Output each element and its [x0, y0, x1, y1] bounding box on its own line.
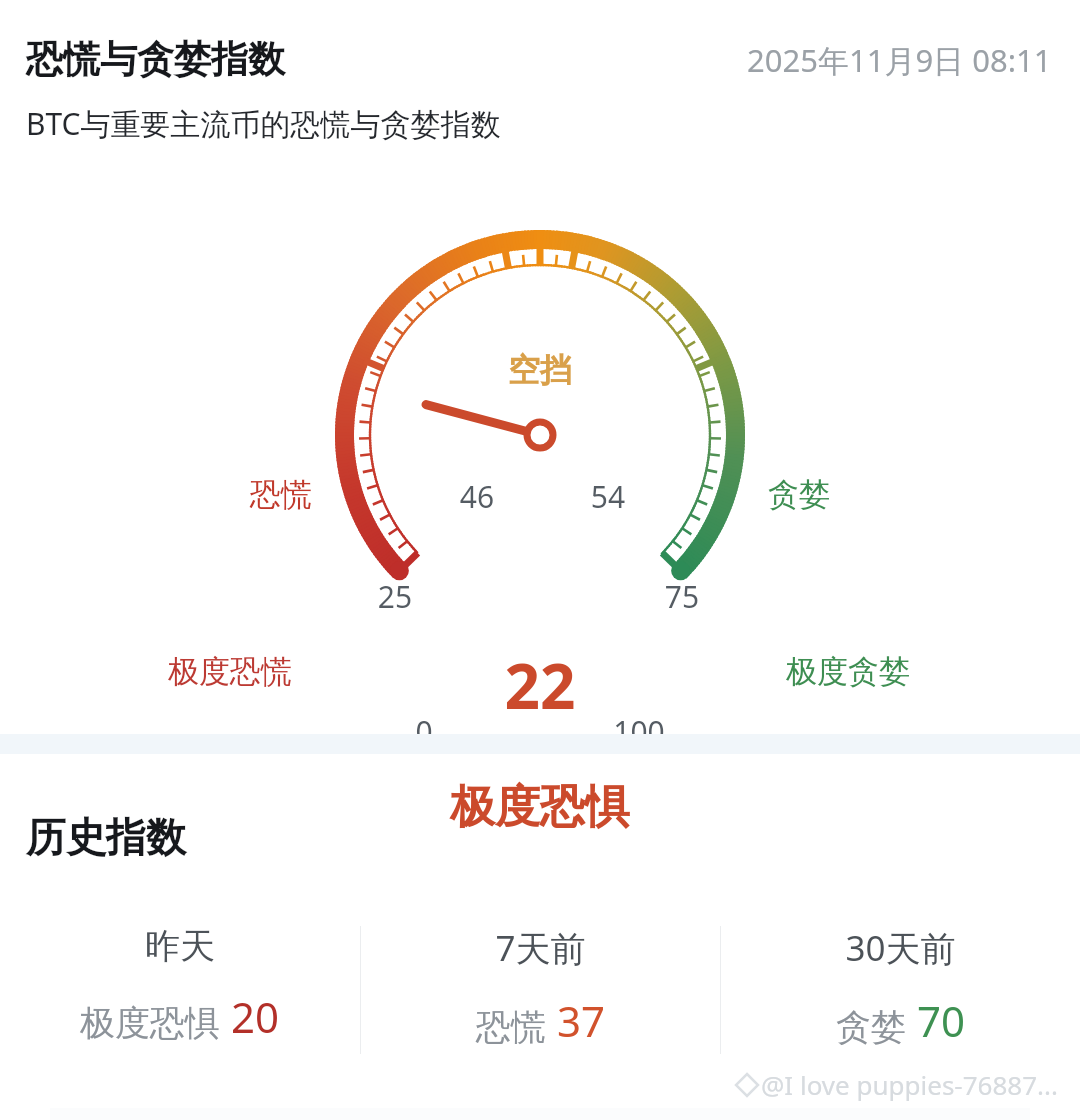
staticText: 贪婪 [836, 1005, 906, 1049]
staticText: 46 [327, 476, 627, 517]
staticText: 昨天 [145, 924, 215, 968]
staticText: 54 [458, 476, 758, 517]
staticText: 25 [245, 576, 545, 617]
staticText: 30天前 [845, 924, 956, 972]
staticText: @I love puppies-76887... [761, 1067, 1058, 1102]
staticText: 75 [532, 576, 832, 617]
staticText: 恐慌 [131, 475, 431, 514]
staticText: 极度恐慌 [80, 652, 380, 691]
staticText: 空挡 [390, 350, 690, 390]
staticText: 70 [917, 992, 966, 1049]
staticText: 2025年11月9日 08:11 [747, 39, 1052, 81]
staticText: 恐慌与贪婪指数 [26, 36, 285, 83]
staticText: 22 [390, 643, 690, 727]
button[interactable]: 7天前 [361, 924, 720, 1049]
button[interactable]: 昨天 [0, 924, 360, 1045]
staticText: 7天前 [495, 924, 586, 972]
staticText: 贪婪 [649, 475, 949, 514]
staticText: BTC与重要主流币的恐慌与贪婪指数 [26, 103, 501, 144]
staticText: 100 [489, 711, 789, 752]
staticText: 20 [231, 988, 280, 1045]
button[interactable]: 30天前 [721, 924, 1080, 1049]
button[interactable]: 恐慌与贪婪指数仪表盘，当前 22，极度恐惧 [0, 144, 1080, 734]
staticText: 极度贪婪 [698, 652, 998, 691]
staticText: 极度恐惧 [80, 1001, 220, 1045]
staticText: 37 [557, 992, 606, 1049]
staticText: 0 [274, 711, 574, 752]
staticText: 极度恐惧 [390, 779, 690, 836]
staticText: 历史指数 [26, 812, 186, 862]
staticText: 恐慌 [476, 1005, 546, 1049]
